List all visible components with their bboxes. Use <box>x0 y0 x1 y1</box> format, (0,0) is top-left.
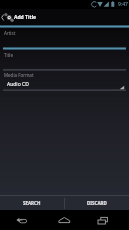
staticText: SEARCH <box>23 200 41 206</box>
button[interactable]: Navigate up <box>0 9 14 26</box>
staticText: Media Format <box>4 72 34 78</box>
button[interactable]: Artist <box>0 26 129 50</box>
button[interactable]: Title <box>0 48 129 71</box>
button[interactable]: SEARCH <box>0 196 64 210</box>
staticText: DISCARD <box>87 200 107 206</box>
button[interactable]: Back <box>0 210 44 230</box>
button[interactable]: Recent apps <box>86 210 129 230</box>
staticText: Artist <box>4 30 16 36</box>
staticText: 9:47 <box>118 1 128 8</box>
staticText: Add Title <box>14 14 37 21</box>
staticText: Audio CD <box>7 81 29 88</box>
button[interactable]: DISCARD <box>65 196 129 210</box>
button[interactable]: Home <box>44 210 86 230</box>
button[interactable]: Media Format <box>0 71 129 91</box>
staticText: Title <box>4 52 13 58</box>
